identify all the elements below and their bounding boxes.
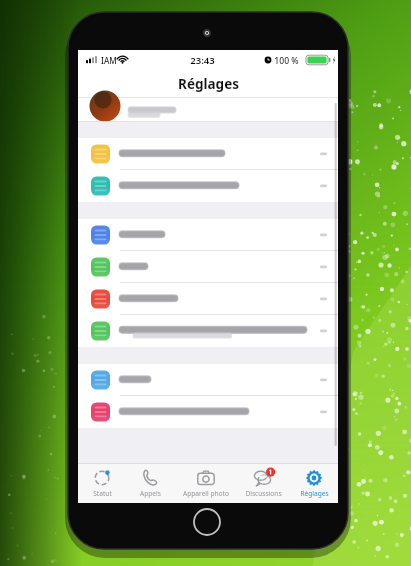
button[interactable] (78, 315, 338, 347)
button[interactable] (78, 364, 338, 396)
button[interactable] (78, 219, 338, 251)
button[interactable] (78, 98, 338, 122)
staticText: Discussions (245, 489, 282, 498)
button[interactable] (78, 251, 338, 283)
staticText: Appels (140, 489, 161, 498)
button[interactable]: Discussions (237, 463, 290, 503)
button[interactable]: Appareil photo (174, 463, 237, 503)
button[interactable] (78, 283, 338, 315)
button[interactable] (78, 396, 338, 428)
button[interactable]: Statut (78, 463, 126, 503)
button[interactable]: Appels (126, 463, 174, 503)
staticText: 23:43 (190, 54, 215, 67)
button[interactable] (78, 138, 338, 170)
button[interactable]: Réglages (290, 463, 338, 503)
staticText: Réglages (300, 489, 329, 498)
staticText: Réglages (178, 75, 239, 93)
staticText: 100 % (274, 55, 299, 67)
staticText: Statut (93, 489, 112, 498)
staticText: IAM (101, 55, 117, 66)
staticText: Appareil photo (183, 489, 229, 498)
button[interactable] (78, 170, 338, 202)
